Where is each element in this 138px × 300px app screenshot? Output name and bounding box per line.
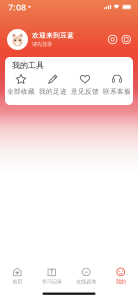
button[interactable]: 联系客服: [101, 73, 133, 95]
staticText: 我的工具: [12, 60, 44, 70]
staticText: 意见反馈: [71, 87, 99, 95]
button[interactable]: 意见反馈: [69, 73, 101, 95]
staticText: 请先登录: [32, 41, 52, 48]
staticText: 我的: [116, 278, 126, 285]
button[interactable]: 首页: [0, 267, 34, 285]
staticText: 联系客服: [103, 87, 131, 95]
staticText: 全部收藏: [7, 87, 35, 95]
button[interactable]: 设置: [121, 35, 131, 44]
staticText: 7:08: [8, 1, 26, 13]
button[interactable]: 我的足迹: [37, 73, 69, 95]
staticText: 我的足迹: [39, 87, 67, 95]
button[interactable]: 在线咨询: [69, 267, 103, 285]
staticText: 欢迎来到豆蓝: [32, 31, 74, 40]
staticText: 首页: [12, 278, 22, 285]
button[interactable]: 扫一扫: [108, 35, 117, 44]
button[interactable]: 学习记录: [34, 267, 69, 285]
button[interactable]: 欢迎来到豆蓝: [7, 29, 74, 50]
button[interactable]: 我的: [103, 267, 138, 285]
button[interactable]: 全部收藏: [5, 73, 37, 95]
staticText: 在线咨询: [76, 278, 96, 285]
staticText: 学习记录: [42, 278, 62, 285]
